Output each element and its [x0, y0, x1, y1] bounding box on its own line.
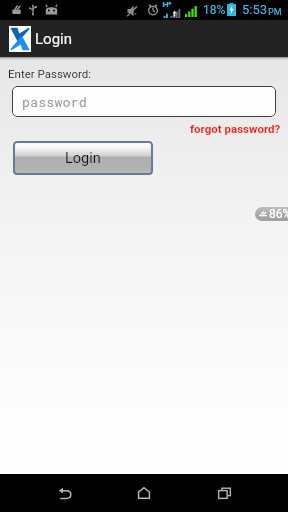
button[interactable]: forgot password?	[190, 122, 281, 135]
button[interactable]: Battery 86 percent	[255, 207, 288, 221]
button[interactable]: Home	[104, 474, 184, 512]
staticText: Login	[35, 30, 72, 48]
button[interactable]: Login	[13, 141, 153, 175]
staticText: PM	[268, 7, 282, 18]
button[interactable]: password	[12, 86, 276, 117]
staticText: Enter Password:	[8, 67, 92, 80]
staticText: 86%	[269, 207, 288, 221]
staticText: password	[22, 93, 87, 111]
staticText: 5:53	[242, 2, 268, 17]
button[interactable]: Back	[24, 474, 104, 512]
button[interactable]: Recent apps	[184, 474, 264, 512]
staticText: Login	[65, 150, 101, 167]
staticText: 18%	[203, 3, 226, 17]
